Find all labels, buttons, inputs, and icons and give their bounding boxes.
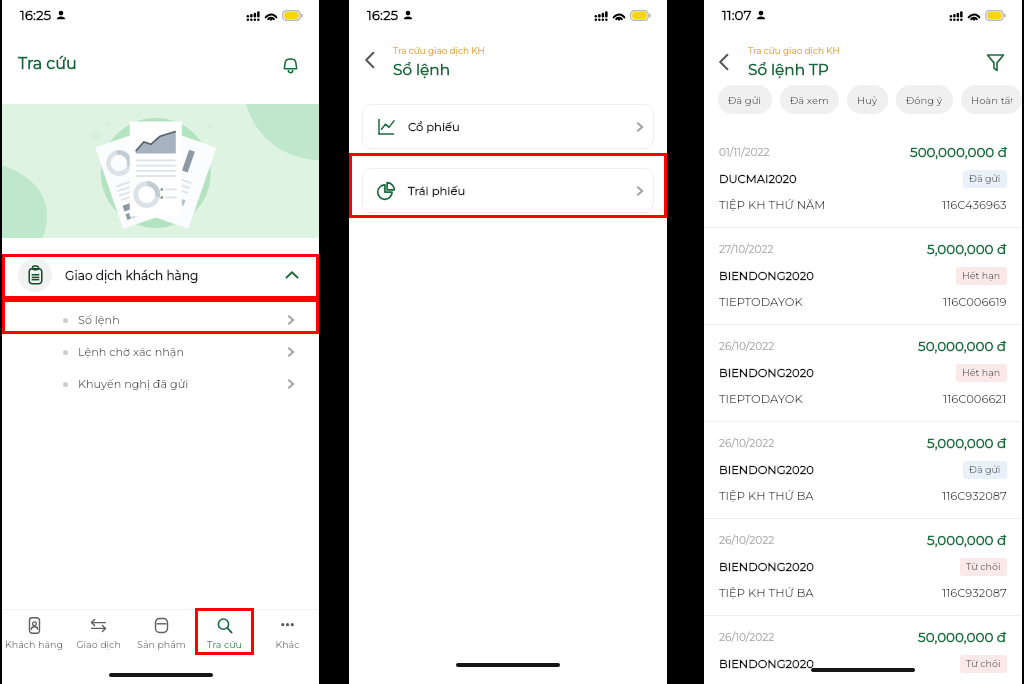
staticText: Sản phẩm [137,639,186,651]
button[interactable]: Tra cứu [193,610,256,662]
staticText: BIENDONG2020 [719,560,960,574]
button[interactable]: Notifications [275,49,305,79]
staticText: 26/10/2022 [719,534,927,547]
staticText: DUCMAI2020 [719,172,963,186]
staticText: 16:25 [367,7,399,23]
staticText: 26/10/2022 [719,340,918,353]
staticText: 116C006621 [943,392,1007,406]
staticText: 50,000,000 đ [918,629,1007,645]
staticText: Đã gửi [728,94,762,106]
staticText: BIENDONG2020 [719,463,963,477]
staticText: Hết hạn [962,270,1001,282]
button[interactable]: Số lệnh [2,304,319,336]
staticText: Đã xem [790,94,829,106]
staticText: Tra cứu giao dịch KH [748,45,840,56]
staticText: Khác [275,639,300,651]
staticText: 5,000,000 đ [927,532,1007,548]
button[interactable]: Hoàn tất [961,85,1022,114]
button[interactable]: Khuyến nghị đã gửi [2,368,319,400]
staticText: Tra cứu giao dịch KH [393,45,485,56]
staticText: BIENDONG2020 [719,657,960,671]
button[interactable]: Khác [256,610,319,662]
staticText: 01/11/2022 [719,146,910,159]
staticText: 500,000,000 đ [910,144,1007,160]
button[interactable]: Trái phiếu [362,168,654,213]
button[interactable]: Sản phẩm [130,610,193,662]
staticText: TIEPTODAYOK [719,295,943,309]
button[interactable]: Đã xem [780,85,839,114]
staticText: 116C932087 [942,586,1007,600]
button[interactable]: 27/10/2022 [704,228,1022,324]
button[interactable]: Back [708,46,740,78]
staticText: Khuyến nghị đã gửi [78,377,284,391]
staticText: Hoàn tất [971,94,1012,106]
staticText: 11:07 [722,7,752,23]
staticText: Huỷ [857,94,878,106]
button[interactable]: 26/10/2022 [704,325,1022,421]
staticText: Lệnh chờ xác nhận [78,345,284,359]
staticText: BIENDONG2020 [719,269,956,283]
staticText: Sổ lệnh [393,60,451,79]
staticText: TIỆP KH THỨ BA [719,586,942,600]
staticText: Tra cứu [18,54,77,74]
staticText: 16:25 [20,7,52,23]
button[interactable]: 26/10/2022 [704,519,1022,615]
staticText: TIỆP KH THỨ BA [719,489,942,503]
staticText: Hết hạn [962,367,1001,379]
staticText: Từ chối [966,561,1001,573]
staticText: Đồng ý [906,94,943,106]
staticText: 116C932087 [942,489,1007,503]
staticText: 26/10/2022 [719,437,927,450]
staticText: BIENDONG2020 [719,366,956,380]
staticText: TIEPTODAYOK [719,392,943,406]
button[interactable]: 01/11/2022 [704,131,1022,227]
button[interactable]: 26/10/2022 [704,422,1022,518]
staticText: 27/10/2022 [719,243,927,256]
button[interactable]: Giao dịch [66,610,130,662]
staticText: Đã gửi [969,464,1001,476]
staticText: Trái phiếu [408,184,633,198]
button[interactable]: Đã gửi [718,85,772,114]
button[interactable]: Lệnh chờ xác nhận [2,336,319,368]
staticText: Sổ lệnh TP [748,60,829,79]
staticText: 116C006619 [943,295,1007,309]
button[interactable]: Khách hàng [2,610,66,662]
button[interactable]: Back [354,44,386,76]
staticText: TIỆP KH THỨ NĂM [719,198,942,212]
button[interactable]: Huỷ [847,85,888,114]
staticText: Giao dịch khách hàng [65,268,283,283]
button[interactable]: Đồng ý [896,85,953,114]
button[interactable]: Giao dịch khách hàng [2,253,319,297]
button[interactable]: Cổ phiếu [362,104,654,149]
staticText: 50,000,000 đ [918,338,1007,354]
staticText: 5,000,000 đ [927,241,1007,257]
button[interactable]: 26/10/2022 [704,616,1022,684]
staticText: Cổ phiếu [408,120,633,134]
staticText: Số lệnh [78,313,284,327]
staticText: Từ chối [966,658,1001,670]
staticText: Giao dịch [76,639,121,651]
staticText: 26/10/2022 [719,631,918,644]
staticText: 5,000,000 đ [927,435,1007,451]
staticText: Khách hàng [5,639,63,651]
staticText: Tra cứu [207,639,242,651]
staticText: 116C436963 [942,198,1007,212]
staticText: Đã gửi [969,173,1001,185]
button[interactable]: Filter [980,47,1010,77]
